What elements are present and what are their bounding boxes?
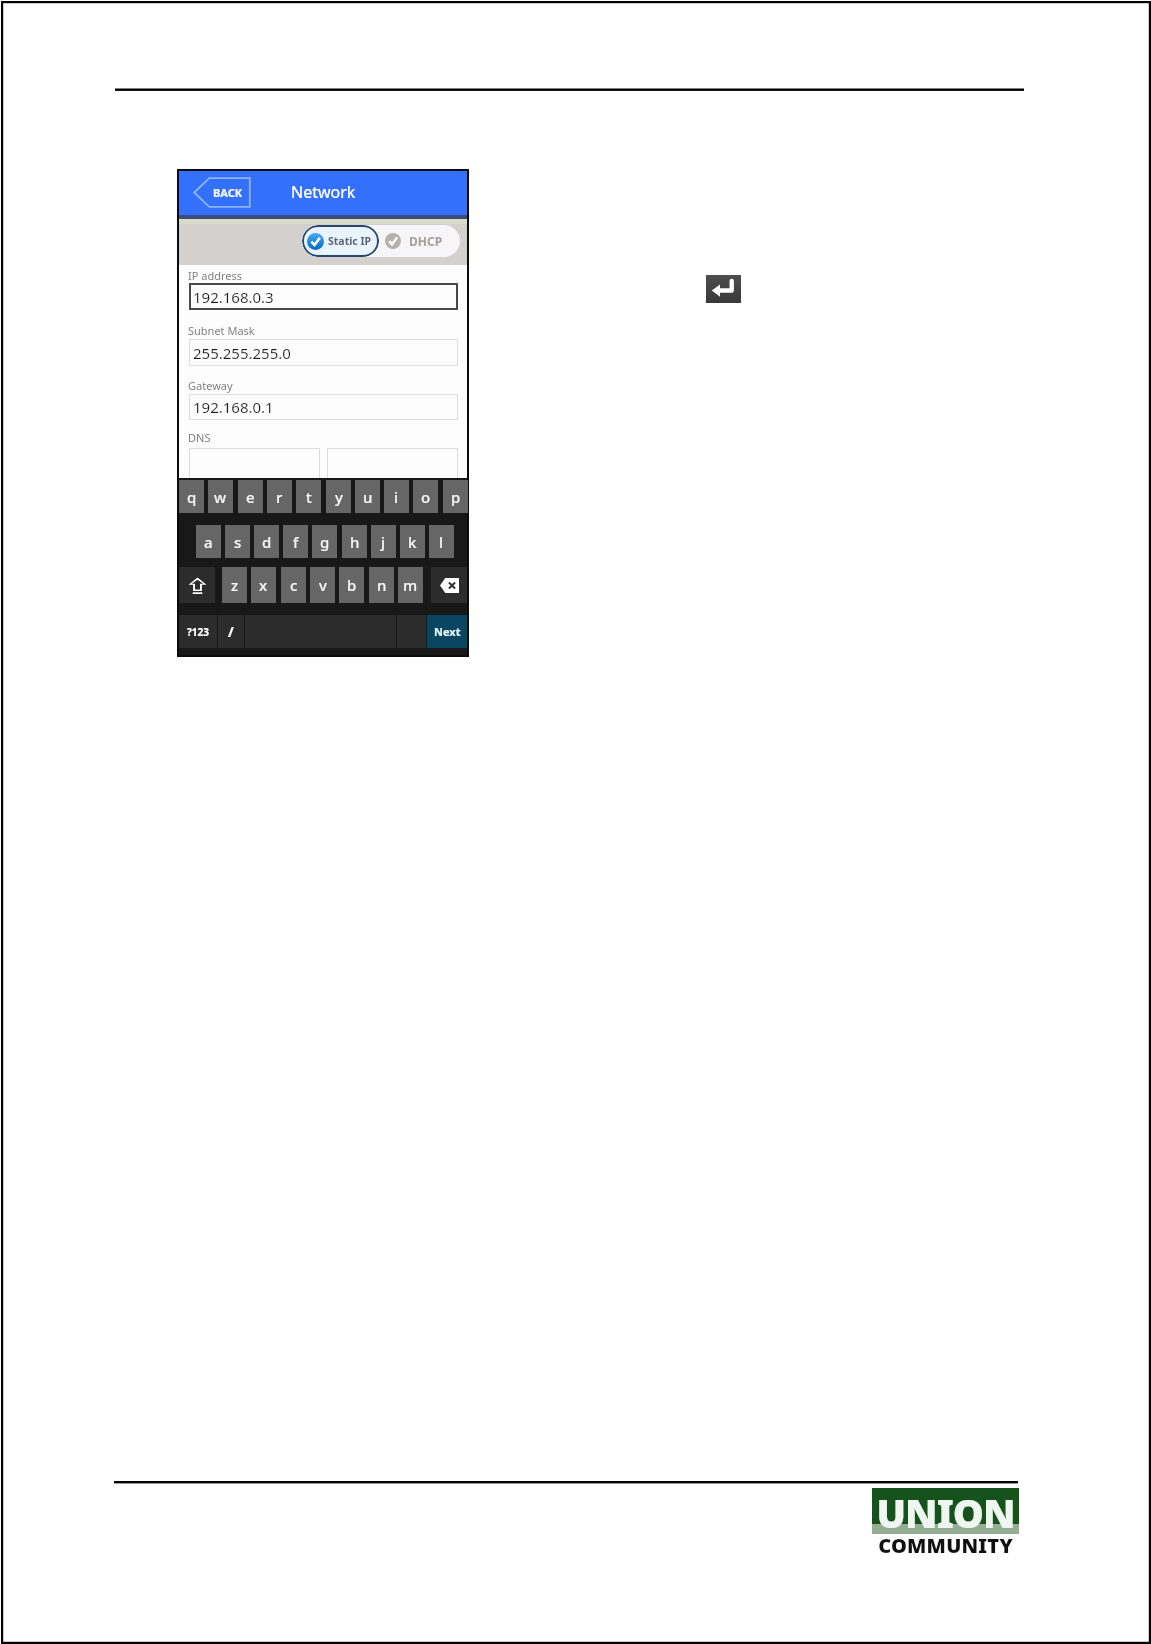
button[interactable]: ?123 — [179, 615, 217, 648]
staticText: n — [377, 575, 387, 595]
button[interactable]: s — [225, 525, 250, 558]
button[interactable]: a — [196, 525, 221, 558]
button[interactable]: q — [179, 480, 204, 513]
button[interactable]: Enter — [706, 275, 741, 303]
staticText: Subnet Mask — [188, 323, 255, 338]
staticText: 192.168.0.3 — [193, 287, 274, 307]
button[interactable]: p — [443, 480, 468, 513]
staticText: UNION — [872, 1486, 1019, 1539]
button[interactable]: DNS secondary — [327, 448, 458, 480]
button[interactable]: r — [267, 480, 292, 513]
button[interactable]: n — [369, 567, 394, 603]
button[interactable]: f — [283, 525, 308, 558]
staticText: BACK — [213, 185, 243, 200]
staticText: y — [335, 487, 343, 507]
button[interactable]: Delete — [431, 567, 467, 603]
staticText: Next — [434, 624, 461, 639]
button[interactable]: g — [312, 525, 337, 558]
staticText: t — [306, 487, 312, 507]
staticText: DNS — [188, 430, 211, 445]
button[interactable]: Back — [193, 177, 251, 208]
staticText: ?123 — [187, 625, 209, 639]
button[interactable]: / — [218, 615, 244, 648]
button[interactable]: 192.168.0.3 — [189, 283, 458, 310]
button[interactable]: o — [413, 480, 438, 513]
staticText: l — [439, 532, 444, 552]
button[interactable]: Shift — [179, 567, 215, 603]
staticText: c — [290, 575, 298, 595]
staticText: j — [381, 532, 386, 552]
staticText: 255.255.255.0 — [193, 343, 291, 363]
staticText: s — [234, 532, 242, 552]
staticText: z — [231, 575, 239, 595]
button[interactable]: DNS primary — [189, 448, 320, 480]
button[interactable]: x — [251, 567, 276, 603]
staticText: Gateway — [188, 378, 233, 393]
button[interactable]: h — [342, 525, 367, 558]
button[interactable]: Next — [427, 615, 467, 648]
staticText: u — [363, 487, 373, 507]
staticText: m — [403, 575, 418, 595]
staticText: Network — [291, 181, 356, 203]
staticText: x — [259, 575, 268, 595]
button[interactable]: y — [326, 480, 351, 513]
button[interactable]: j — [371, 525, 396, 558]
staticText: a — [204, 532, 213, 552]
staticText: 192.168.0.1 — [193, 397, 274, 417]
button[interactable]: DHCP — [379, 225, 443, 257]
button[interactable]: v — [310, 567, 335, 603]
staticText: h — [350, 532, 360, 552]
staticText: e — [246, 487, 255, 507]
staticText: o — [421, 487, 431, 507]
button[interactable]: u — [355, 480, 380, 513]
button[interactable]: 192.168.0.1 — [189, 394, 458, 420]
button[interactable]: w — [208, 480, 233, 513]
staticText: IP address — [188, 268, 243, 283]
staticText: i — [394, 487, 399, 507]
button[interactable]: l — [429, 525, 454, 558]
button[interactable]: k — [400, 525, 425, 558]
staticText: / — [228, 622, 234, 641]
button[interactable]: i — [384, 480, 409, 513]
staticText: d — [262, 532, 272, 552]
staticText: v — [319, 575, 327, 595]
button[interactable]: Static IP — [302, 225, 379, 257]
button[interactable]: b — [339, 567, 364, 603]
staticText: p — [451, 487, 461, 507]
button[interactable]: m — [398, 567, 423, 603]
staticText: q — [187, 487, 197, 507]
staticText: b — [347, 575, 357, 595]
staticText: g — [320, 532, 330, 552]
staticText: Static IP — [328, 234, 372, 248]
staticText: k — [408, 532, 417, 552]
button[interactable]: d — [254, 525, 279, 558]
staticText: f — [293, 532, 299, 552]
button[interactable]: z — [222, 567, 247, 603]
button[interactable]: 255.255.255.0 — [189, 339, 458, 366]
button[interactable]: c — [281, 567, 306, 603]
staticText: w — [214, 487, 227, 507]
button[interactable]: e — [238, 480, 263, 513]
button[interactable]: t — [296, 480, 321, 513]
staticText: COMMUNITY — [872, 1532, 1019, 1559]
staticText: r — [276, 487, 283, 507]
staticText: DHCP — [409, 233, 443, 249]
